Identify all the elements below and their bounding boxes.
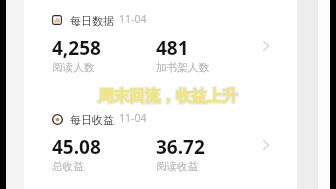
other: More xyxy=(260,40,272,52)
staticText: 总收益 xyxy=(52,160,84,173)
staticText: 周末回流，收益上升 xyxy=(98,86,238,106)
staticText: 每日数据 xyxy=(70,14,114,28)
other: More xyxy=(260,139,272,151)
staticText: 11-04 xyxy=(119,111,147,125)
staticText: 36.72 xyxy=(156,134,205,160)
staticText: 阅读人数 xyxy=(52,61,95,74)
staticText: 周末回流，收益上升 xyxy=(97,87,237,107)
staticText: 阅读收益 xyxy=(156,160,199,173)
staticText: 每日收益 xyxy=(70,113,114,127)
staticText: 周末回流，收益上升 xyxy=(98,85,238,105)
button[interactable] xyxy=(24,0,297,189)
staticText: 加书架人数 xyxy=(156,61,209,74)
staticText: 周末回流，收益上升 xyxy=(99,86,239,106)
staticText: 周末回流，收益上升 xyxy=(99,85,239,105)
staticText: 45.08 xyxy=(52,134,101,160)
staticText: 周末回流，收益上升 xyxy=(98,87,238,107)
staticText: 481 xyxy=(156,35,189,61)
staticText: 周末回流，收益上升 xyxy=(97,85,237,105)
staticText: 周末回流，收益上升 xyxy=(99,87,239,107)
staticText: 周末回流，收益上升 xyxy=(97,86,237,106)
staticText: 11-04 xyxy=(119,12,147,26)
staticText: 4,258 xyxy=(52,35,101,61)
